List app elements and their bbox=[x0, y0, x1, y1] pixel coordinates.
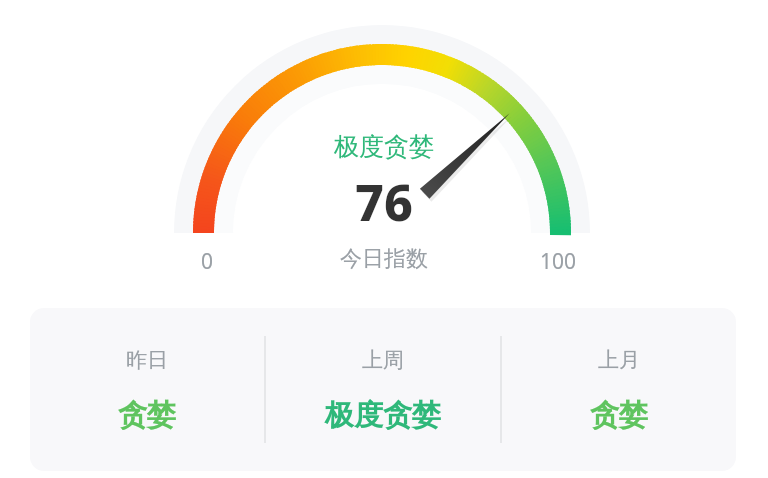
staticText: 极度贪婪 bbox=[325, 397, 441, 434]
button[interactable]: 上周 bbox=[266, 308, 500, 471]
button[interactable]: 昨日 bbox=[30, 308, 264, 471]
staticText: 0 bbox=[177, 247, 237, 276]
staticText: 贪婪 bbox=[118, 397, 176, 434]
staticText: 今日指数 bbox=[0, 245, 768, 273]
staticText: 昨日 bbox=[126, 347, 168, 373]
button[interactable]: 上月 bbox=[502, 308, 736, 471]
button[interactable] bbox=[0, 0, 768, 300]
staticText: 100 bbox=[527, 247, 589, 276]
staticText: 极度贪婪 bbox=[0, 131, 768, 162]
staticText: 上月 bbox=[598, 347, 640, 373]
staticText: 上周 bbox=[362, 347, 404, 373]
staticText: 贪婪 bbox=[590, 397, 648, 434]
staticText: 76 bbox=[0, 168, 768, 236]
